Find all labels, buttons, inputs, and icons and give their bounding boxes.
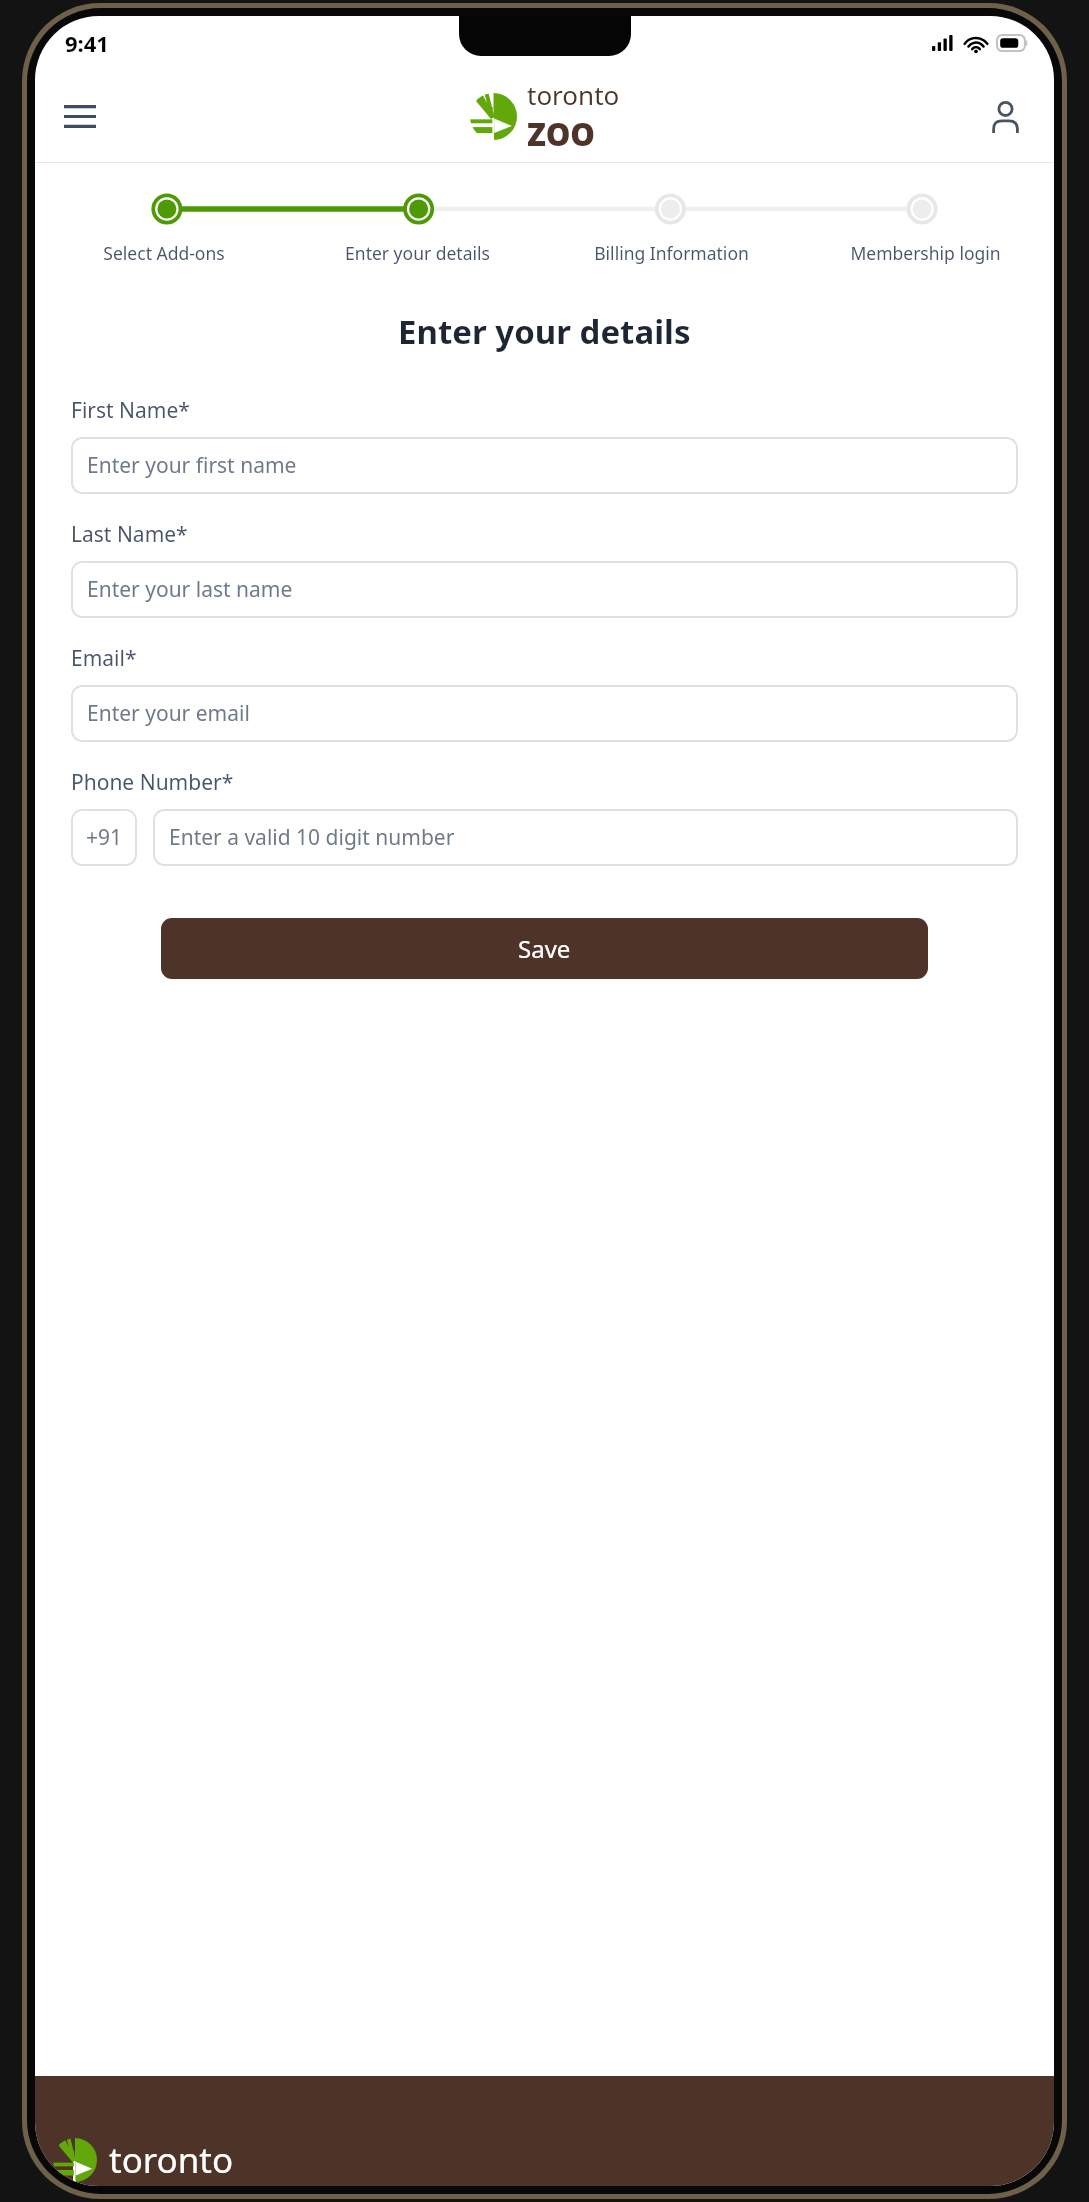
staticText: Save	[518, 932, 571, 965]
staticText: Email*	[71, 644, 137, 673]
staticText: Select Add-ons	[103, 241, 225, 265]
staticText: Membership login	[850, 241, 1001, 265]
button[interactable]: Account	[978, 89, 1032, 143]
staticText: toronto	[109, 2136, 234, 2184]
button[interactable]: Menu	[53, 89, 107, 143]
staticText: toronto	[527, 77, 620, 112]
button[interactable]: Enter a valid 10 digit number	[153, 809, 1018, 866]
staticText: Enter your email	[87, 699, 250, 728]
button[interactable]: Enter your email	[71, 685, 1018, 742]
button[interactable]: Enter your last name	[71, 561, 1018, 618]
button[interactable]: Save	[161, 918, 928, 979]
staticText: Last Name*	[71, 520, 188, 549]
staticText: First Name*	[71, 396, 190, 425]
staticText: ZOO	[527, 113, 596, 155]
button[interactable]: +91	[71, 809, 137, 866]
button[interactable]: Enter your first name	[71, 437, 1018, 494]
button[interactable]: toronto	[470, 77, 620, 155]
staticText: +91	[86, 823, 123, 852]
staticText: 9:41	[65, 28, 109, 58]
button[interactable]: Enter your details	[290, 241, 544, 265]
staticText: Enter your details	[345, 241, 490, 265]
staticText: Enter your details	[398, 309, 691, 354]
staticText: Enter your first name	[87, 451, 297, 480]
staticText: Billing Information	[594, 241, 749, 265]
button[interactable]: Billing Information	[544, 241, 798, 265]
button[interactable]: Membership login	[798, 241, 1052, 265]
staticText: Phone Number*	[71, 768, 234, 797]
staticText: Enter a valid 10 digit number	[169, 823, 455, 852]
button[interactable]: Select Add-ons	[37, 241, 290, 265]
staticText: Enter your last name	[87, 575, 293, 604]
